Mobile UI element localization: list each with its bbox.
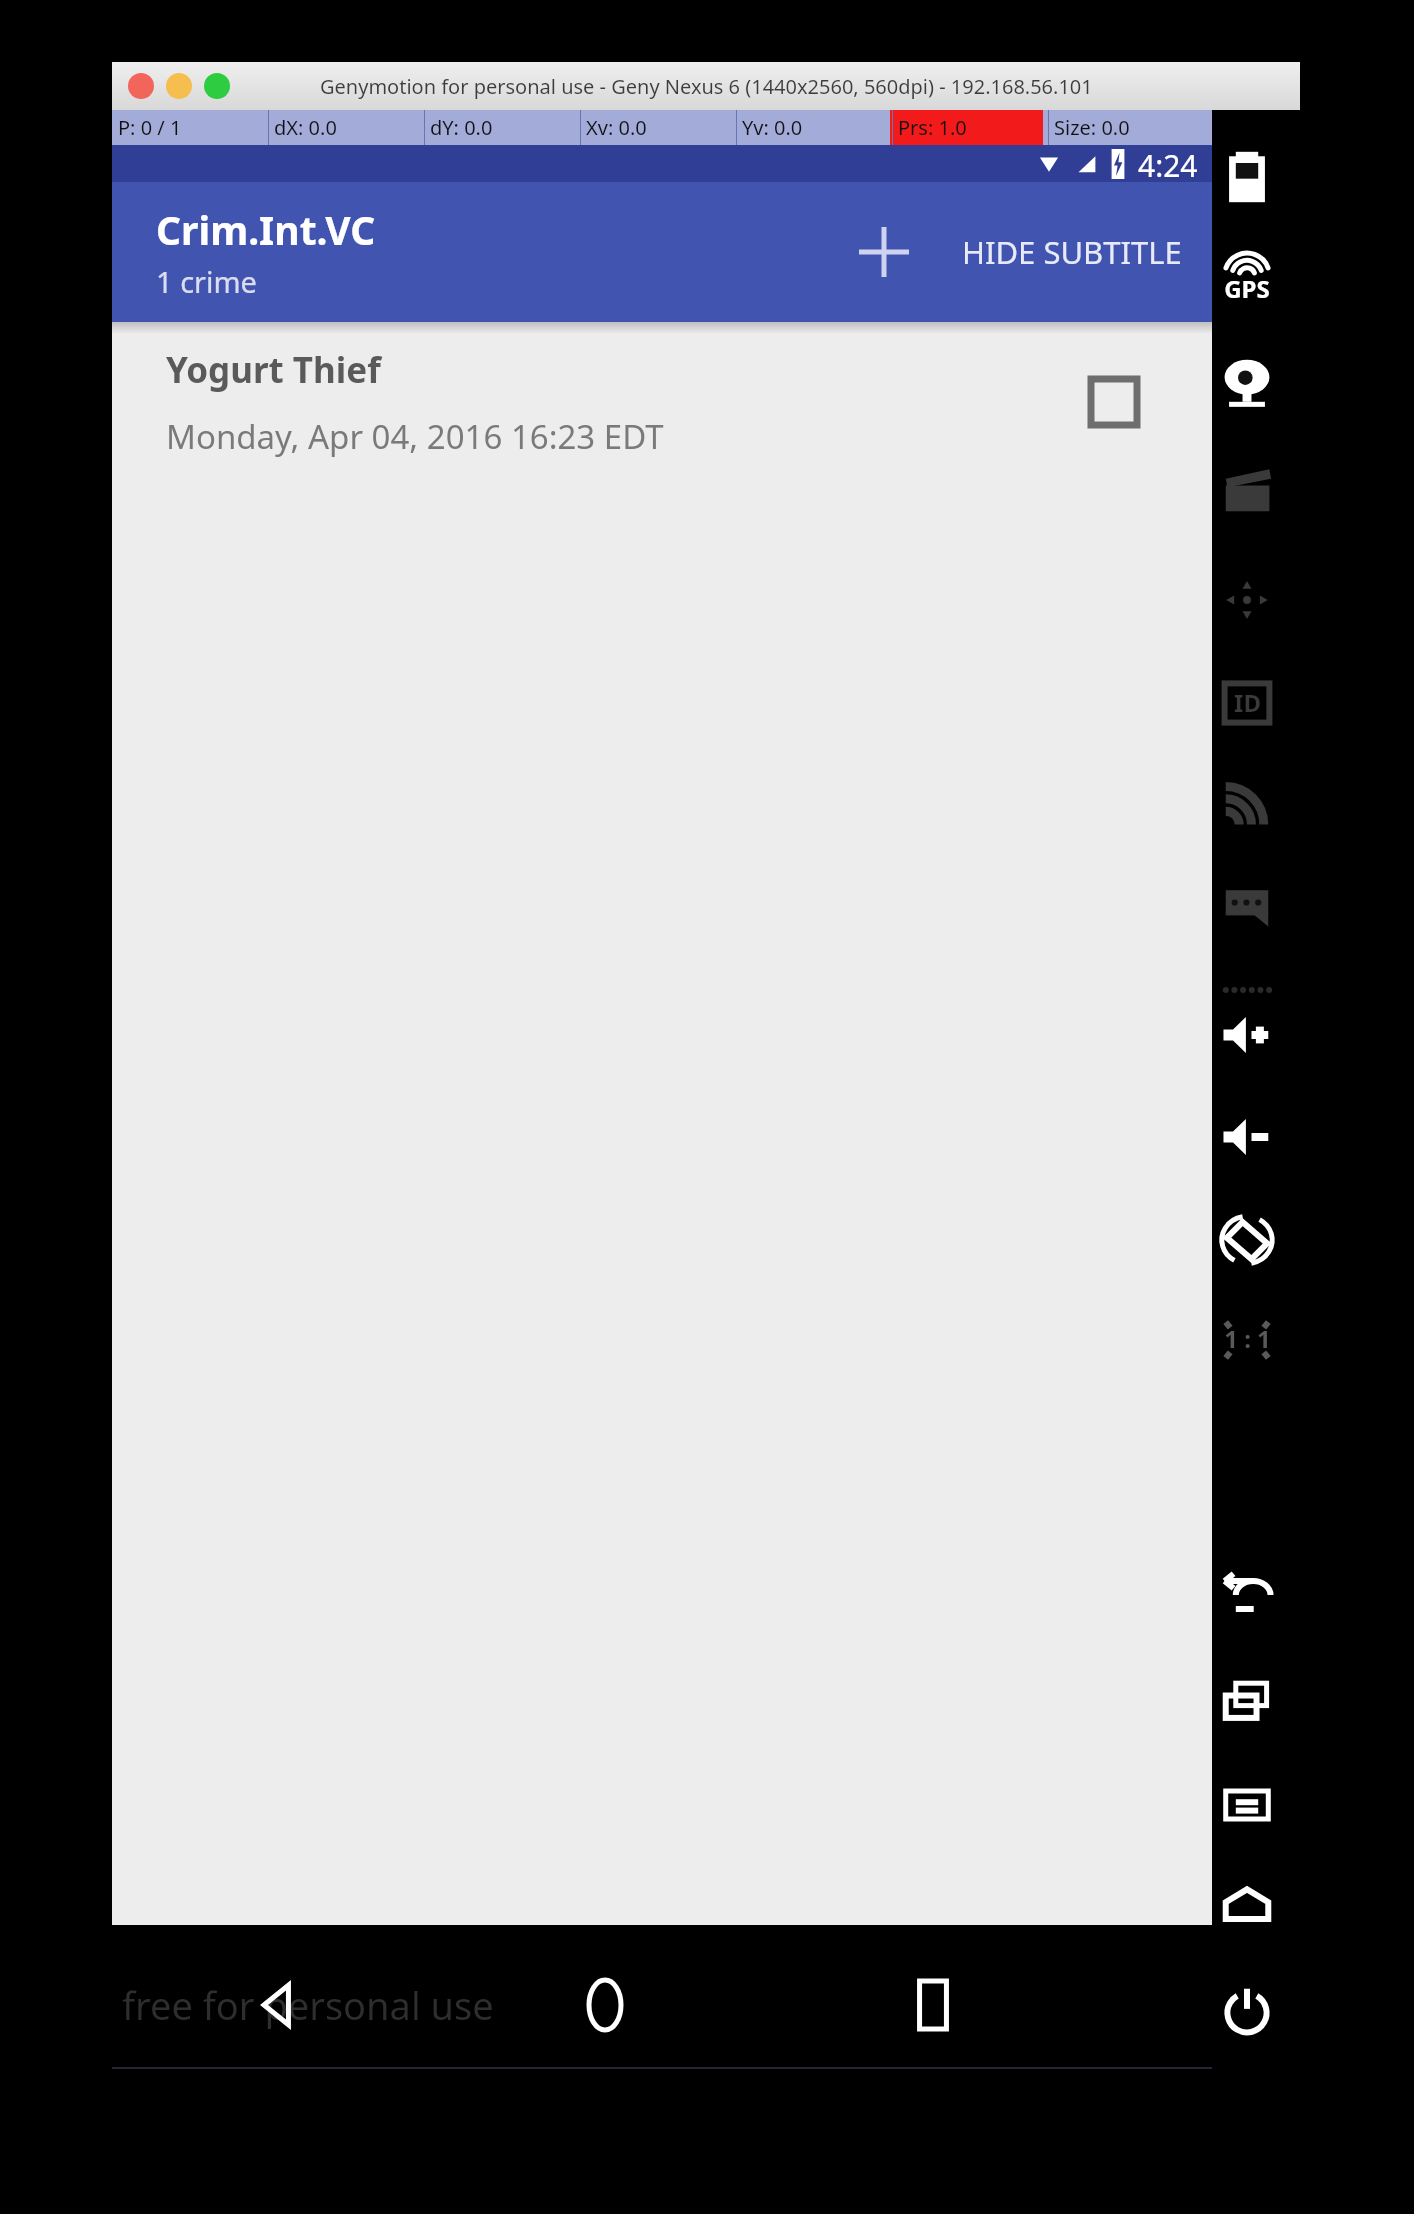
button[interactable]: Emulator control	[1212, 1665, 1282, 1735]
staticText: Xv: 0.0	[586, 114, 647, 141]
staticText: dY: 0.0	[430, 114, 493, 141]
staticText: 4:24	[1138, 145, 1198, 182]
button[interactable]: Emulator control	[1212, 1205, 1282, 1275]
button[interactable]: Emulator control	[1212, 668, 1282, 738]
button[interactable]: Emulator control	[1212, 245, 1282, 315]
button[interactable]: Emulator control	[1212, 1975, 1282, 2045]
staticText: free for personal use	[122, 1979, 494, 2031]
button[interactable]: Back	[112, 1925, 441, 2085]
staticText: Genymotion for personal use - Geny Nexus…	[320, 73, 1093, 100]
staticText: 1 crime	[156, 262, 257, 301]
button[interactable]: Emulator control	[1212, 770, 1282, 840]
button[interactable]: Emulator control	[1212, 350, 1282, 420]
staticText: P: 0 / 1	[118, 114, 182, 141]
button[interactable]: Home	[441, 1925, 769, 2085]
button[interactable]: Solved	[1074, 362, 1154, 442]
button[interactable]: Emulator control	[1212, 1870, 1282, 1940]
staticText: Crim.Int.VC	[156, 203, 376, 256]
staticText: HIDE SUBTITLE	[962, 231, 1182, 273]
staticText: Yogurt Thief	[166, 346, 381, 394]
button[interactable]: Emulator control	[1212, 565, 1282, 635]
button[interactable]: HIDE SUBTITLE	[932, 182, 1212, 322]
staticText: Monday, Apr 04, 2016 16:23 EDT	[166, 414, 664, 459]
button[interactable]: Yogurt Thief	[112, 322, 1212, 482]
button[interactable]: Emulator control	[1212, 1102, 1282, 1172]
button[interactable]: Emulator control	[1212, 955, 1282, 1025]
button[interactable]: Window control	[128, 73, 154, 99]
button[interactable]: Emulator control	[1212, 1305, 1282, 1375]
button[interactable]: Emulator control	[1212, 455, 1282, 525]
staticText: dX: 0.0	[274, 114, 337, 141]
button[interactable]: Recent apps	[769, 1925, 1097, 2085]
button[interactable]: Emulator control	[1212, 142, 1282, 212]
staticText: Prs: 1.0	[898, 114, 967, 141]
button[interactable]: Window control	[204, 73, 230, 99]
button[interactable]: Window control	[166, 73, 192, 99]
staticText: 1 : 1	[1224, 1322, 1271, 1355]
staticText: Yv: 0.0	[742, 114, 803, 141]
staticText: ID	[1234, 686, 1261, 719]
button[interactable]: Emulator control	[1212, 1000, 1282, 1070]
button[interactable]: Emulator control	[1212, 1560, 1282, 1630]
staticText: Size: 0.0	[1054, 114, 1130, 141]
button[interactable]: New crime	[836, 204, 932, 300]
button[interactable]: Emulator control	[1212, 872, 1282, 942]
staticText: GPS	[1224, 272, 1270, 305]
button[interactable]: Emulator control	[1212, 1770, 1282, 1840]
